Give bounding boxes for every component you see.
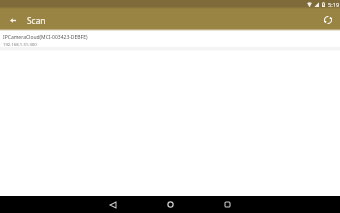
button[interactable]: IPCameraCloud(MCI-003423-DEBFE) xyxy=(0,31,340,51)
staticText: 192.168.1.51:300 xyxy=(3,41,37,47)
button[interactable]: Recent apps xyxy=(205,196,249,213)
staticText: 5:19 xyxy=(328,1,340,9)
staticText: IPCameraCloud(MCI-003423-DEBFE) xyxy=(3,34,88,41)
staticText: Scan xyxy=(27,15,46,26)
button[interactable]: Back xyxy=(0,9,27,31)
button[interactable]: Home xyxy=(148,196,192,213)
button[interactable]: Back xyxy=(91,196,135,213)
button[interactable]: Refresh xyxy=(315,9,340,31)
